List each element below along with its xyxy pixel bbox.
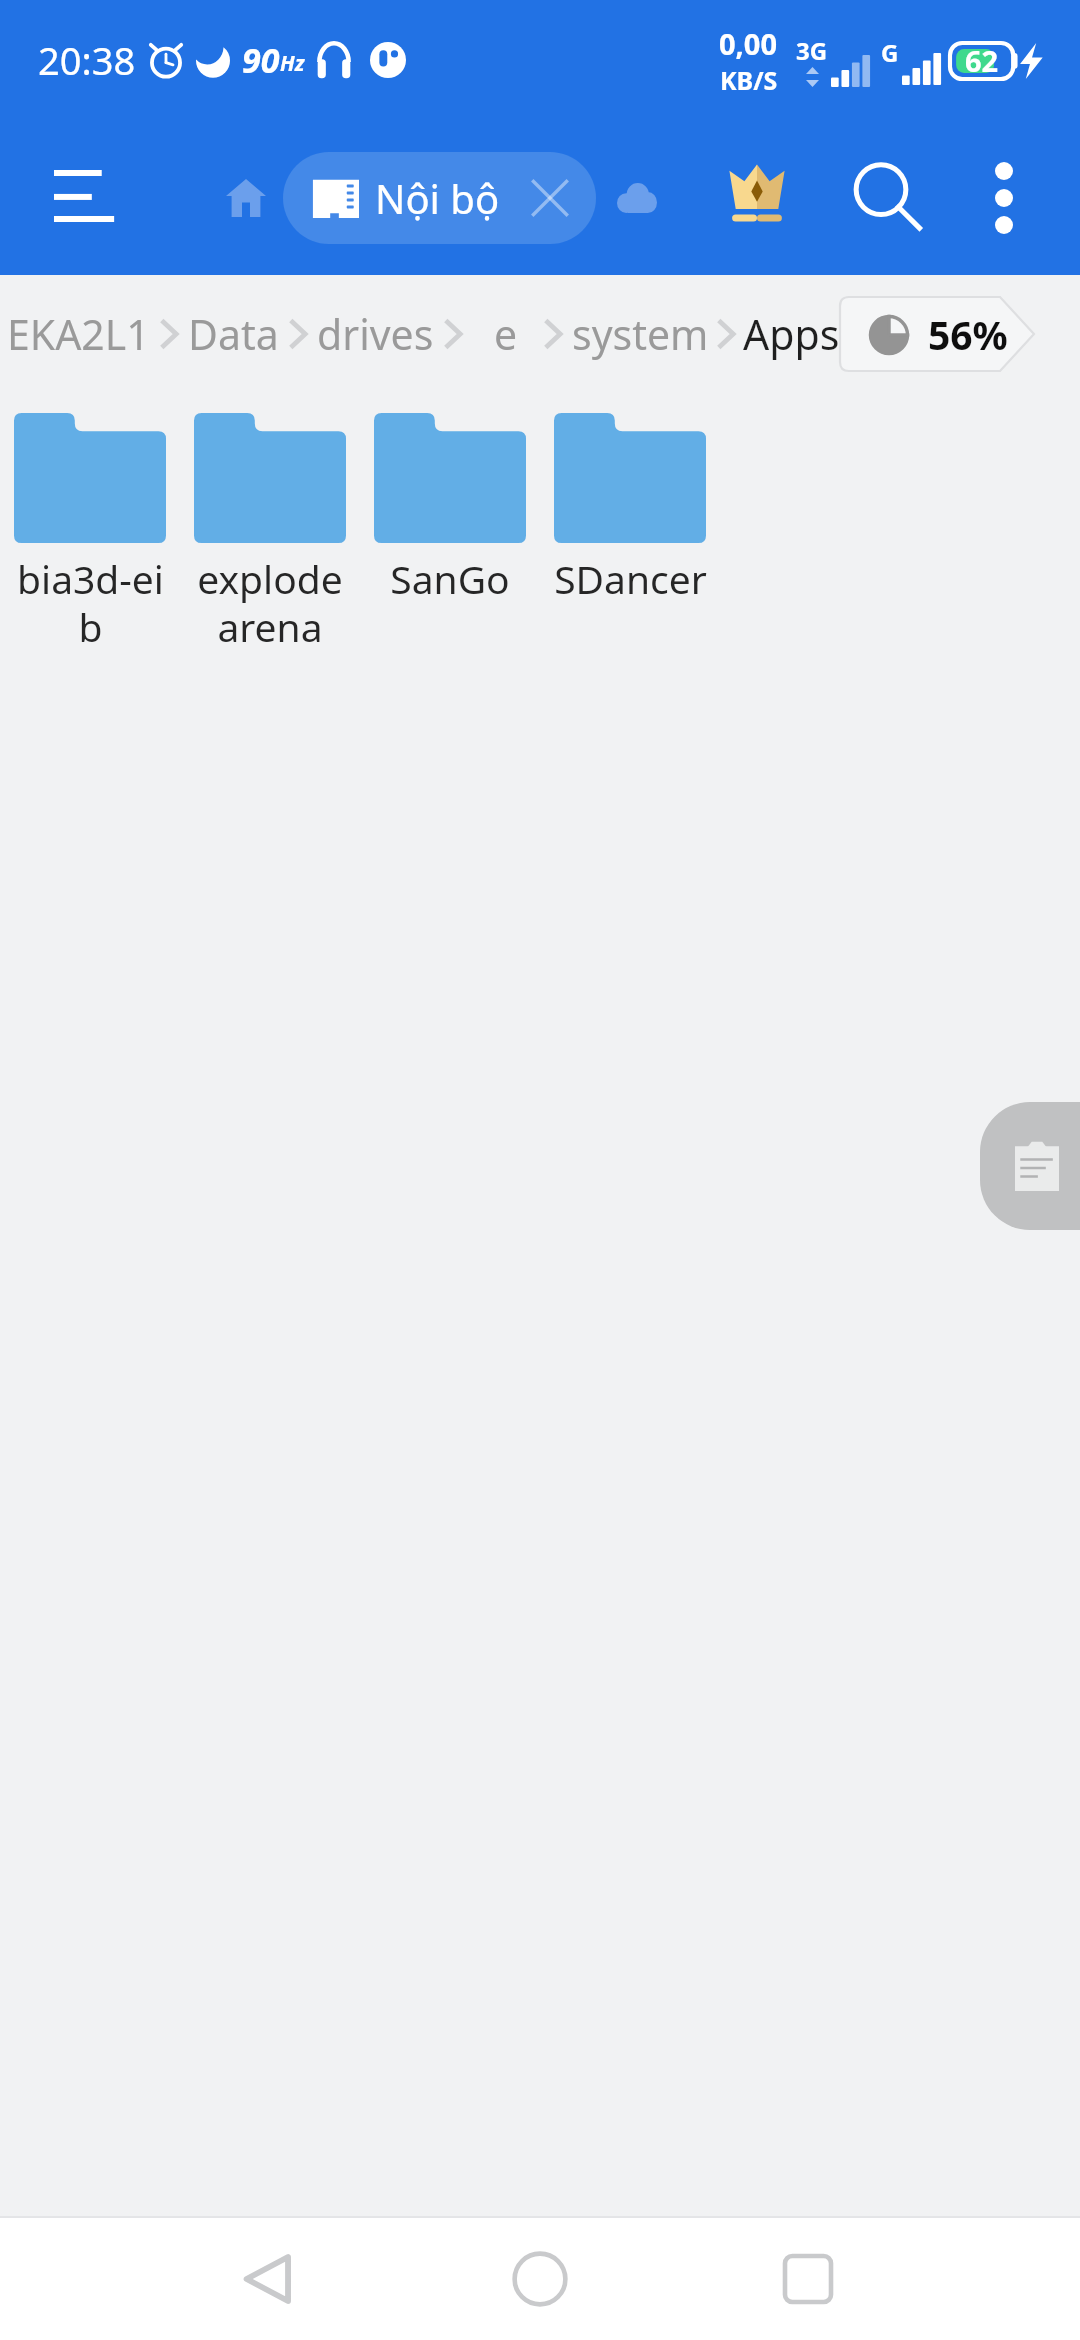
- button[interactable]: Data: [185, 300, 282, 368]
- button[interactable]: Nội bộ: [283, 152, 596, 244]
- button[interactable]: Menu: [30, 143, 140, 253]
- staticText: system: [572, 306, 709, 362]
- button[interactable]: Back: [209, 2219, 329, 2339]
- staticText: SanGo: [390, 552, 510, 605]
- button[interactable]: SDancer: [540, 407, 720, 605]
- staticText: Nội bộ: [375, 171, 500, 225]
- staticText: SDancer: [554, 552, 707, 605]
- staticText: bia3d-ei b: [17, 552, 164, 653]
- staticText: Hz: [280, 49, 305, 78]
- staticText: Data: [188, 306, 279, 362]
- button[interactable]: Home: [210, 162, 282, 234]
- button[interactable]: Recents: [748, 2219, 868, 2339]
- button[interactable]: Premium: [696, 134, 824, 262]
- button[interactable]: bia3d-ei b: [0, 407, 180, 653]
- button[interactable]: Apps: [740, 300, 843, 368]
- button[interactable]: 56%: [840, 297, 1034, 371]
- button[interactable]: explode arena: [180, 407, 360, 653]
- staticText: KB/S: [720, 63, 778, 97]
- staticText: explode arena: [197, 552, 343, 653]
- staticText: 3G: [796, 34, 828, 67]
- staticText: EKA2L1: [7, 306, 150, 362]
- button[interactable]: drives: [314, 300, 437, 368]
- button[interactable]: system: [569, 300, 712, 368]
- staticText: Apps: [743, 306, 840, 362]
- staticText: e: [494, 306, 518, 362]
- button[interactable]: EKA2L1: [4, 300, 153, 368]
- staticText: 0,00: [719, 24, 778, 63]
- staticText: drives: [317, 306, 434, 362]
- staticText: 20:38: [38, 34, 136, 86]
- staticText: G: [881, 36, 899, 69]
- button[interactable]: More options: [952, 146, 1056, 250]
- staticText: 62: [965, 41, 999, 80]
- button[interactable]: Clipboard: [980, 1102, 1080, 1230]
- button[interactable]: Search: [824, 134, 952, 262]
- button[interactable]: e: [491, 300, 521, 368]
- button[interactable]: Home: [480, 2219, 600, 2339]
- button[interactable]: Cloud: [578, 143, 696, 253]
- staticText: 90: [242, 37, 280, 83]
- button[interactable]: SanGo: [360, 407, 540, 605]
- staticText: 56%: [928, 308, 1008, 361]
